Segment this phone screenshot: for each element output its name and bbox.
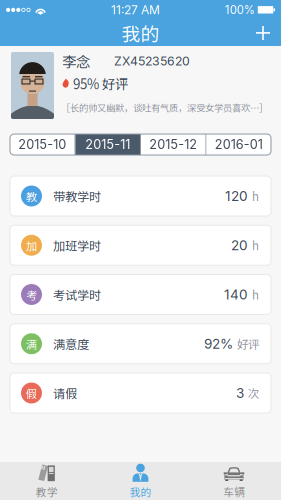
staticText: 加 — [26, 237, 37, 253]
button[interactable]: 满 — [10, 324, 271, 364]
button[interactable]: 教学 — [0, 462, 94, 500]
staticText: 100% — [225, 3, 255, 17]
staticText: 2015-10 — [18, 137, 66, 152]
staticText: 95% 好评 — [73, 74, 128, 93]
staticText: 120 — [225, 188, 248, 204]
staticText: 车辆 — [223, 484, 245, 499]
staticText: 我的 — [121, 19, 159, 46]
button[interactable]: 我的 — [94, 462, 187, 500]
staticText: 3 — [236, 385, 244, 401]
staticText: 教 — [26, 188, 37, 204]
staticText: h — [252, 286, 259, 303]
staticText: 11:27 AM — [111, 3, 160, 17]
staticText: 请假 — [53, 384, 77, 402]
staticText: ［长的帅又幽默，谈吐有气质，深受女学员喜欢…］ — [61, 101, 268, 114]
button[interactable]: Add — [245, 20, 281, 46]
staticText: 2015-11 — [85, 137, 130, 152]
staticText: 教学 — [36, 484, 58, 499]
staticText: 满 — [26, 336, 37, 352]
staticText: 满意度 — [53, 335, 89, 353]
staticText: 我的 — [129, 484, 151, 499]
staticText: 假 — [26, 385, 37, 401]
staticText: 考 — [26, 286, 37, 303]
staticText: 次 — [248, 385, 259, 401]
button[interactable]: 车辆 — [187, 462, 281, 500]
staticText: 加班学时 — [53, 236, 101, 254]
button[interactable]: 教 — [10, 176, 271, 216]
staticText: 好评 — [237, 335, 259, 352]
button[interactable]: 2015-12 — [141, 134, 205, 155]
button[interactable]: 考 — [10, 274, 271, 314]
staticText: ZX45235620 — [114, 54, 190, 68]
staticText: h — [252, 188, 259, 204]
button[interactable]: 加 — [10, 225, 271, 265]
staticText: 李念 — [62, 51, 90, 71]
staticText: 2016-01 — [215, 137, 263, 152]
button[interactable]: 2015-10 — [10, 134, 74, 155]
staticText: h — [252, 237, 259, 253]
staticText: 考试学时 — [53, 286, 101, 303]
staticText: 20 — [231, 237, 248, 253]
button[interactable]: 2016-01 — [206, 134, 271, 155]
staticText: 带教学时 — [53, 187, 101, 205]
staticText: 92% — [204, 335, 233, 352]
staticText: 140 — [224, 286, 248, 303]
button[interactable]: 假 — [10, 373, 271, 413]
staticText: 2015-12 — [149, 137, 197, 152]
button[interactable]: 2015-11 — [75, 134, 140, 155]
